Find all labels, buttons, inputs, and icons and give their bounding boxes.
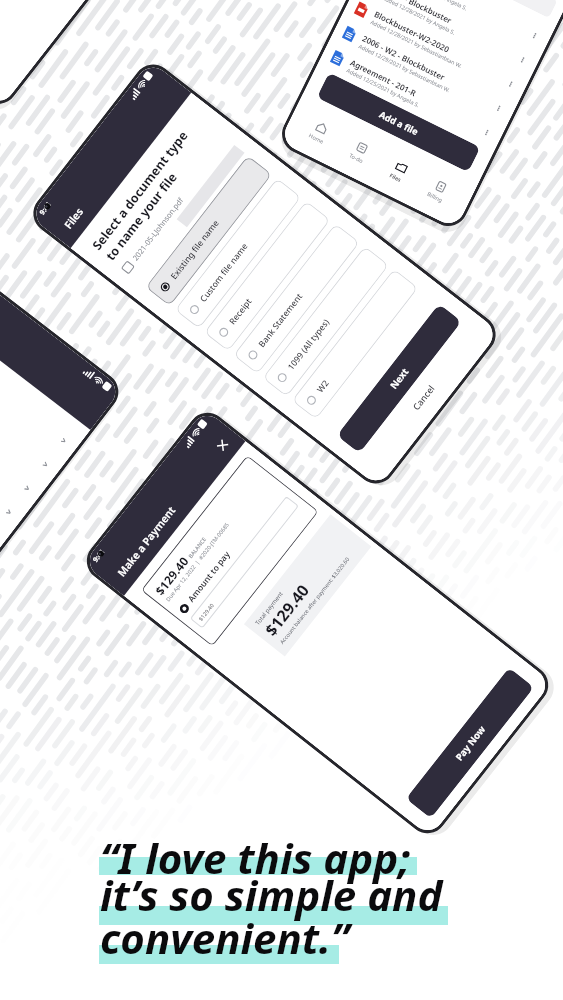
button[interactable]: Bank Statement xyxy=(233,223,360,374)
staticText: Make a Payment xyxy=(114,503,179,579)
button[interactable]: Custom file name xyxy=(175,178,301,329)
button[interactable]: Billing xyxy=(421,173,456,208)
staticText: 2021-05-LJohnson.pdf xyxy=(130,196,185,263)
staticText: $129.40 xyxy=(151,553,192,598)
button[interactable]: Search xyxy=(390,0,558,18)
staticText: “I love this app; xyxy=(100,829,411,886)
staticText: Existing file name xyxy=(168,217,222,282)
staticText: Rental Agreement xyxy=(396,0,465,1)
button[interactable]: 1098 - Blockbuster xyxy=(363,0,533,74)
staticText: Receipt xyxy=(226,295,255,327)
button[interactable]: Add a file xyxy=(317,72,480,172)
button[interactable]: To-do xyxy=(343,135,376,168)
staticText: Next xyxy=(387,365,411,391)
staticText: $129.40 xyxy=(260,579,314,640)
staticText: it’s so simple and xyxy=(100,866,443,923)
staticText: Added 12/28/2021 by Angela S. xyxy=(381,0,457,36)
staticText: 9:41 xyxy=(91,547,107,565)
staticText: Billing xyxy=(426,190,444,204)
button[interactable]: Receipt xyxy=(204,201,331,352)
button[interactable]: Rental Agreement xyxy=(375,0,545,49)
button[interactable]: Cancel xyxy=(366,326,481,468)
staticText: Due Apr 12, 2022 | #2020-JTM-00685 xyxy=(164,520,231,602)
button[interactable] xyxy=(0,372,39,502)
staticText: W2 xyxy=(314,377,332,395)
staticText: Cancel xyxy=(410,382,437,412)
button[interactable]: 1099 (All types) xyxy=(262,246,389,397)
button[interactable]: Agreement - 201-R xyxy=(327,44,497,146)
staticText: Agreement - 201-R xyxy=(349,57,418,98)
staticText: $129.40 xyxy=(197,601,215,622)
staticText: Blockbuster-W2-2020 xyxy=(373,8,452,55)
staticText: 1098 - Blockbuster xyxy=(385,0,454,26)
staticText: Bank Statement xyxy=(256,290,306,350)
staticText: 1099 (All types) xyxy=(285,316,332,372)
staticText: Added 12/29/2021 by Sebastianbtan W. xyxy=(358,42,452,94)
staticText: Add a file xyxy=(378,108,421,137)
staticText: Added 12/28/2021 by Sebastianbtan W. xyxy=(369,18,464,70)
staticText: Home xyxy=(308,131,325,145)
button[interactable] xyxy=(0,420,3,550)
button[interactable]: Existing file name xyxy=(145,155,272,306)
staticText: Added 12/25/2021 by Angela S. xyxy=(346,66,421,109)
staticText: Select a document type to name your file xyxy=(88,127,205,263)
button[interactable]: 2006 - W2 - Blockbuster xyxy=(339,19,509,122)
button[interactable]: Blockbuster-W2-2020 xyxy=(351,0,521,98)
staticText: Pay Now xyxy=(453,722,489,763)
staticText: BALANCE xyxy=(186,535,207,559)
staticText: To-do xyxy=(348,151,365,164)
staticText: Files xyxy=(61,205,86,232)
staticText: convenient.” xyxy=(100,909,350,966)
staticText: Added 12/28/2021 by Angela S. xyxy=(393,0,469,12)
staticText: Account balance after payment: $3,020.60 xyxy=(278,555,351,645)
button[interactable] xyxy=(0,396,21,526)
staticText: Total payment xyxy=(254,589,285,627)
button[interactable] xyxy=(0,348,57,479)
button[interactable]: Next xyxy=(337,304,462,453)
staticText: 9:41 xyxy=(37,200,54,217)
button[interactable]: Files xyxy=(383,155,415,187)
button[interactable]: W2 xyxy=(291,269,418,420)
staticText: 2006 - W2 - Blockbuster xyxy=(361,32,447,83)
staticText: Custom file name xyxy=(197,240,251,304)
button[interactable]: Close xyxy=(213,436,232,454)
button[interactable] xyxy=(0,325,76,455)
staticText: Amount to pay xyxy=(185,548,233,604)
button[interactable]: Pay Now xyxy=(406,667,534,818)
button[interactable]: Home xyxy=(302,115,337,149)
staticText: Files xyxy=(389,171,403,183)
